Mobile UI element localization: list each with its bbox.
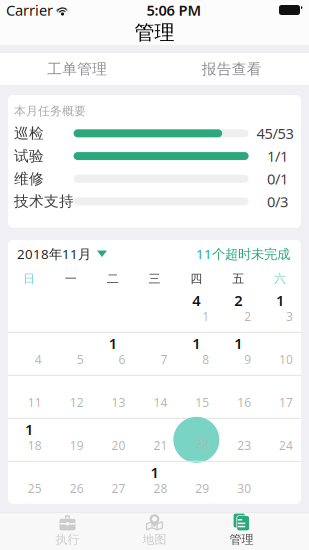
staticText: 巡检 (14, 124, 44, 142)
staticText: 5:06 PM (146, 0, 201, 20)
staticText: 三 (148, 271, 160, 286)
staticText: 16 (237, 394, 251, 410)
staticText: Carrier (6, 0, 53, 20)
staticText: 3 (286, 308, 293, 324)
button[interactable]: 工单管理 (0, 53, 154, 85)
staticText: 2 (244, 308, 251, 324)
staticText: 本月任务概要 (14, 104, 86, 118)
button[interactable]: 地图 (111, 513, 198, 550)
staticText: 4 (192, 291, 200, 310)
staticText: 24 (279, 437, 293, 453)
staticText: 15 (195, 394, 209, 410)
staticText: 20 (112, 437, 126, 453)
staticText: 7 (160, 351, 167, 367)
staticText: 1 (25, 420, 33, 439)
staticText: 18 (28, 437, 42, 453)
staticText: 2018年11月 (17, 245, 91, 263)
button[interactable]: 执行 (24, 513, 111, 550)
staticText: 1 (202, 308, 209, 324)
staticText: 维修 (14, 170, 44, 188)
staticText: 5 (77, 351, 84, 367)
staticText: 22 (195, 436, 209, 452)
staticText: 管理 (229, 532, 253, 547)
staticText: 1 (234, 334, 242, 353)
staticText: 27 (112, 480, 126, 496)
staticText: 1 (276, 291, 284, 310)
staticText: 六 (274, 271, 286, 286)
staticText: 9 (244, 351, 251, 367)
staticText: 26 (70, 480, 84, 496)
staticText: 6 (119, 351, 126, 367)
staticText: 11个超时未完成 (196, 245, 290, 263)
staticText: 一 (65, 271, 77, 286)
button[interactable]: 管理 (198, 513, 285, 550)
staticText: 报告查看 (202, 60, 262, 78)
staticText: 30 (237, 480, 251, 496)
staticText: 五 (232, 271, 244, 286)
staticText: 23 (237, 437, 251, 453)
staticText: 试验 (14, 147, 44, 165)
staticText: 管理 (134, 20, 174, 45)
staticText: 0/1 (267, 169, 288, 188)
staticText: 二 (107, 271, 119, 286)
button[interactable]: 报告查看 (154, 53, 309, 85)
staticText: 地图 (142, 532, 166, 547)
staticText: 28 (153, 480, 167, 496)
button[interactable]: 2018年11月 (17, 245, 107, 263)
staticText: 17 (279, 394, 293, 410)
staticText: 14 (153, 394, 167, 410)
staticText: 12 (70, 394, 84, 410)
staticText: 19 (70, 437, 84, 453)
staticText: 1 (109, 334, 117, 353)
staticText: 执行 (55, 532, 79, 547)
staticText: 1 (192, 334, 200, 353)
staticText: 2 (234, 291, 242, 310)
staticText: 4 (35, 351, 42, 367)
staticText: 技术支持 (14, 192, 74, 210)
staticText: 8 (202, 351, 209, 367)
staticText: 0/3 (267, 192, 288, 211)
staticText: 日 (23, 271, 35, 286)
staticText: 四 (190, 271, 202, 286)
staticText: 10 (279, 351, 293, 367)
staticText: 25 (28, 480, 42, 496)
button[interactable]: 11个超时未完成 (196, 245, 290, 263)
staticText: 1 (150, 463, 158, 482)
staticText: 13 (112, 394, 126, 410)
staticText: 11 (28, 394, 42, 410)
staticText: 1/1 (267, 146, 288, 166)
staticText: 29 (195, 480, 209, 496)
staticText: 45/53 (257, 124, 294, 143)
staticText: 21 (153, 437, 167, 453)
staticText: 工单管理 (47, 60, 107, 78)
